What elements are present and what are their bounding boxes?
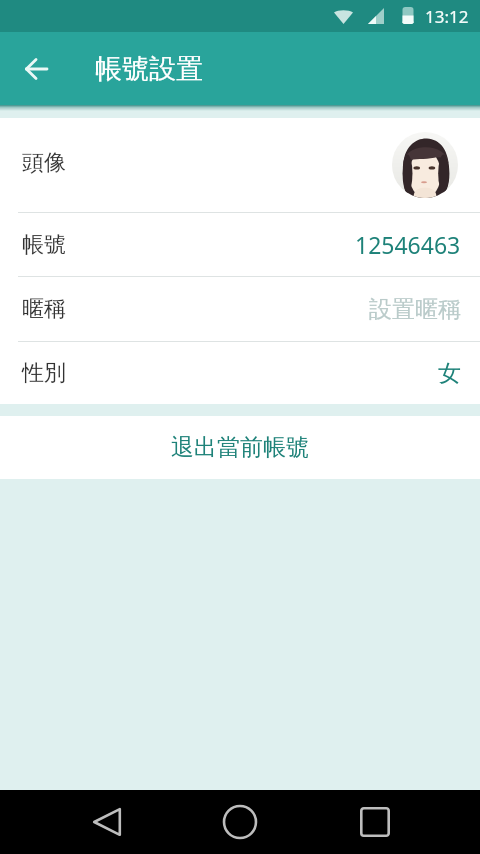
staticText: 退出當前帳號: [171, 433, 309, 462]
staticText: 頭像: [22, 149, 66, 177]
button[interactable]: 退出當前帳號: [0, 416, 480, 479]
button[interactable]: 帳號: [0, 213, 480, 276]
staticText: 暱稱: [22, 295, 66, 323]
button[interactable]: Back: [14, 47, 58, 91]
staticText: 13:12: [425, 5, 469, 28]
button[interactable]: 頭像: [0, 118, 480, 212]
staticText: 性別: [22, 359, 66, 387]
button[interactable]: 暱稱: [0, 277, 480, 341]
button[interactable]: Recents: [351, 798, 399, 846]
staticText: 設置暱稱: [369, 295, 461, 324]
staticText: 12546463: [355, 229, 461, 260]
staticText: 帳號: [22, 231, 66, 259]
staticText: 帳號設置: [95, 52, 203, 86]
button[interactable]: Back: [83, 798, 131, 846]
button[interactable]: 性別: [0, 342, 480, 404]
staticText: 女: [438, 359, 461, 388]
button[interactable]: Home: [216, 798, 264, 846]
